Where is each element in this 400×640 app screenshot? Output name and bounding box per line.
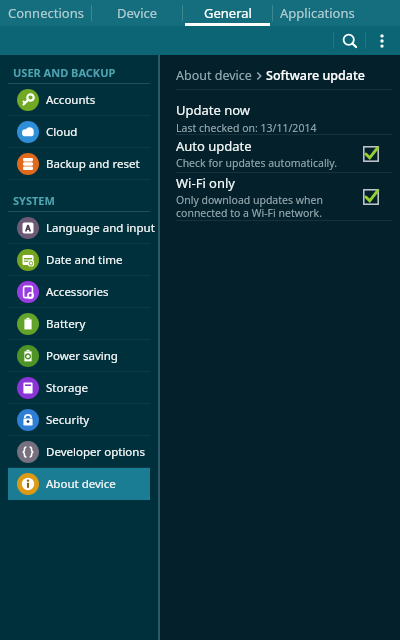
staticText: SYSTEM <box>13 193 55 208</box>
staticText: About device <box>46 476 116 492</box>
staticText: Last checked on: 13/11/2014 <box>176 121 317 134</box>
staticText: Battery <box>46 316 86 332</box>
button[interactable]: Date and time <box>0 244 158 276</box>
staticText: Software update <box>266 67 365 84</box>
button[interactable]: Storage <box>0 372 158 404</box>
button[interactable] <box>334 26 365 55</box>
staticText: Developer options <box>46 444 145 460</box>
button[interactable]: Wi-Fi only <box>160 173 400 220</box>
button[interactable]: Developer options <box>0 436 158 468</box>
button[interactable]: About device <box>8 468 150 500</box>
staticText: Backup and reset <box>46 156 140 172</box>
button[interactable]: Device <box>92 0 182 26</box>
staticText: Update now <box>176 101 251 119</box>
staticText: Only download updates when connected to … <box>176 193 354 220</box>
staticText: Accessories <box>46 284 109 300</box>
button[interactable]: Backup and reset <box>0 148 158 180</box>
button[interactable] <box>366 26 397 55</box>
staticText: USER AND BACKUP <box>13 65 116 80</box>
staticText: About device <box>176 67 252 84</box>
staticText: Accounts <box>46 92 96 108</box>
staticText: Cloud <box>46 124 78 140</box>
staticText: Power saving <box>46 348 118 364</box>
button[interactable]: General <box>183 0 272 26</box>
staticText: Check for updates automatically. <box>176 156 338 170</box>
button[interactable]: Cloud <box>0 116 158 148</box>
staticText: General <box>204 4 252 22</box>
button[interactable]: Security <box>0 404 158 436</box>
button[interactable]: Accounts <box>0 84 158 116</box>
staticText: Device <box>117 4 158 22</box>
staticText: Storage <box>46 380 88 396</box>
staticText: Security <box>46 412 90 428</box>
button[interactable]: Language and input <box>0 212 158 244</box>
staticText: Applications <box>280 4 355 22</box>
button[interactable]: Applications <box>273 0 362 26</box>
staticText: Connections <box>8 4 84 22</box>
button[interactable]: Accessories <box>0 276 158 308</box>
button[interactable]: Auto update <box>160 135 400 172</box>
staticText: Wi-Fi only <box>176 174 235 192</box>
staticText: Date and time <box>46 252 123 268</box>
button[interactable]: Update now <box>160 90 400 134</box>
button[interactable]: Battery <box>0 308 158 340</box>
staticText: Language and input <box>46 220 155 236</box>
button[interactable]: Connections <box>0 0 91 26</box>
staticText: Auto update <box>176 137 252 155</box>
button[interactable]: Power saving <box>0 340 158 372</box>
